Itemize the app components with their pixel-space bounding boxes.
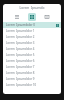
button[interactable]: Lorem Ipsumdolor 1 [3, 28, 61, 34]
staticText: Lorem Ipsumdo [19, 6, 45, 10]
other: Selected item action [56, 24, 59, 27]
button[interactable]: Lorem Ipsumdolor 0 [3, 22, 61, 28]
staticText: Lorem Ipsumdolor 1 [6, 29, 35, 33]
staticText: Lorem Ipsumdolor 3 [6, 41, 35, 45]
staticText: Lorem Ipsumdolor 5 [6, 53, 35, 57]
staticText: Lorem Ipsumdolor 7 [6, 65, 35, 69]
staticText: Lorem Ipsumdolor 8 [6, 71, 35, 75]
button[interactable]: Lorem Ipsumdolor 10 [3, 82, 61, 88]
button[interactable]: Lorem Ipsumdolor 3 [3, 40, 61, 46]
button[interactable]: Lorem Ipsumdolor 4 [3, 46, 61, 52]
staticText: Lorem Ipsumdolor 9 [6, 77, 35, 81]
staticText: Lorem Ipsumdolor 6 [6, 59, 35, 63]
button[interactable]: Lorem Ipsumdolor 8 [3, 70, 61, 76]
button[interactable]: List view [13, 13, 21, 21]
staticText: Lorem Ipsumdolor 0 [6, 23, 35, 27]
staticText: Lorem Ipsumdolor 2 [6, 35, 35, 39]
button[interactable]: Lorem Ipsumdolor 6 [3, 58, 61, 64]
button[interactable]: Grid view [28, 13, 36, 21]
button[interactable]: Lorem Ipsumdolor 5 [3, 52, 61, 58]
button[interactable]: Lorem Ipsumdolor 2 [3, 34, 61, 40]
staticText: Lorem Ipsumdolor 10 [6, 83, 37, 87]
staticText: Lorem Ipsumdolor 4 [6, 47, 35, 51]
button[interactable]: Lorem Ipsumdolor 7 [3, 64, 61, 70]
button[interactable]: Lorem Ipsumdolor 9 [3, 76, 61, 82]
button[interactable]: Card view [43, 13, 51, 21]
